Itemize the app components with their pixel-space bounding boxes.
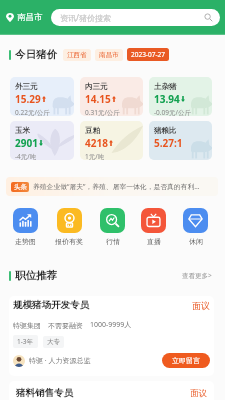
staticText: 外三元 xyxy=(15,82,38,91)
staticText: 猪粮比 xyxy=(154,126,177,135)
button[interactable]: 内三元 xyxy=(80,77,143,116)
staticText: 1-3年 xyxy=(17,337,34,346)
staticText: 0.22元/公斤 xyxy=(15,108,50,116)
staticText: 南昌市 xyxy=(17,12,43,23)
staticText: 头条 xyxy=(14,183,27,191)
button[interactable]: 规模猪场开发专员 xyxy=(9,296,214,376)
staticText: -4元/吨 xyxy=(15,152,37,160)
button[interactable]: 豆粕 xyxy=(80,121,143,160)
button[interactable]: 休闲 xyxy=(183,208,208,246)
button[interactable]: 走势图 xyxy=(13,208,38,246)
staticText: 0.31元/公斤 xyxy=(85,108,120,116)
button[interactable]: 行情 xyxy=(100,208,125,246)
staticText: 2023-07-27 xyxy=(131,50,165,59)
staticText: 5.27:1 xyxy=(154,136,183,150)
staticText: 报价有奖 xyxy=(55,237,83,246)
button[interactable]: 立即留言 xyxy=(162,353,210,368)
staticText: 1元/吨 xyxy=(85,152,105,160)
button[interactable]: 猪料销售专员 xyxy=(9,381,214,400)
staticText: -0.09元/公斤 xyxy=(154,108,191,116)
staticText: 豆粕 xyxy=(85,126,100,135)
staticText: 猪料销售专员 xyxy=(16,387,73,399)
staticText: 休闲 xyxy=(189,237,203,246)
button[interactable]: 头条 xyxy=(6,177,218,196)
staticText: 玉米 xyxy=(15,126,30,135)
button[interactable]: 资讯/猪价搜索 xyxy=(51,9,220,26)
staticText: 面议 xyxy=(190,388,207,399)
staticText: 13.94 xyxy=(154,92,180,106)
staticText: 1000-9999人 xyxy=(90,320,132,330)
button[interactable]: 2023-07-27 xyxy=(127,48,169,61)
staticText: 特驱 · 人力资源总监 xyxy=(29,356,91,366)
staticText: 内三元 xyxy=(85,82,108,91)
staticText: 养殖企业做“屠夫”，养殖、屠宰一体化，是否真的有利... xyxy=(33,182,200,191)
button[interactable]: 报价有奖 xyxy=(55,208,83,246)
button[interactable]: 外三元 xyxy=(10,77,74,116)
staticText: 大专 xyxy=(47,338,60,346)
staticText: 今日猪价 xyxy=(15,48,57,61)
button[interactable]: 江西省 xyxy=(63,49,91,61)
staticText: 规模猪场开发专员 xyxy=(13,299,89,311)
staticText: 土杂猪 xyxy=(154,82,177,91)
staticText: 职位推荐 xyxy=(15,269,57,282)
button[interactable]: 查看更多> xyxy=(180,269,214,282)
button[interactable]: 南昌市 xyxy=(0,8,46,27)
staticText: 江西省 xyxy=(67,51,87,59)
button[interactable]: 直播 xyxy=(141,208,166,246)
staticText: 直播 xyxy=(147,237,161,246)
button[interactable]: 玉米 xyxy=(10,121,74,160)
staticText: 面议 xyxy=(192,300,210,311)
staticText: 不需要融资 xyxy=(48,321,83,330)
staticText: 资讯/猪价搜索 xyxy=(60,12,111,23)
button[interactable]: 土杂猪 xyxy=(149,77,212,116)
staticText: 4218 xyxy=(85,136,108,150)
staticText: 特驱集团 xyxy=(13,321,41,330)
button[interactable]: 南昌市 xyxy=(95,49,123,61)
staticText: 查看更多> xyxy=(182,271,212,280)
staticText: 行情 xyxy=(106,237,120,246)
staticText: 南昌市 xyxy=(99,51,119,59)
staticText: 走势图 xyxy=(15,237,36,246)
button[interactable]: 猪粮比 xyxy=(149,121,212,160)
staticText: 15.29 xyxy=(15,92,41,106)
staticText: 立即留言 xyxy=(172,356,200,365)
staticText: 14.15 xyxy=(85,92,111,106)
staticText: 2901 xyxy=(15,136,38,150)
